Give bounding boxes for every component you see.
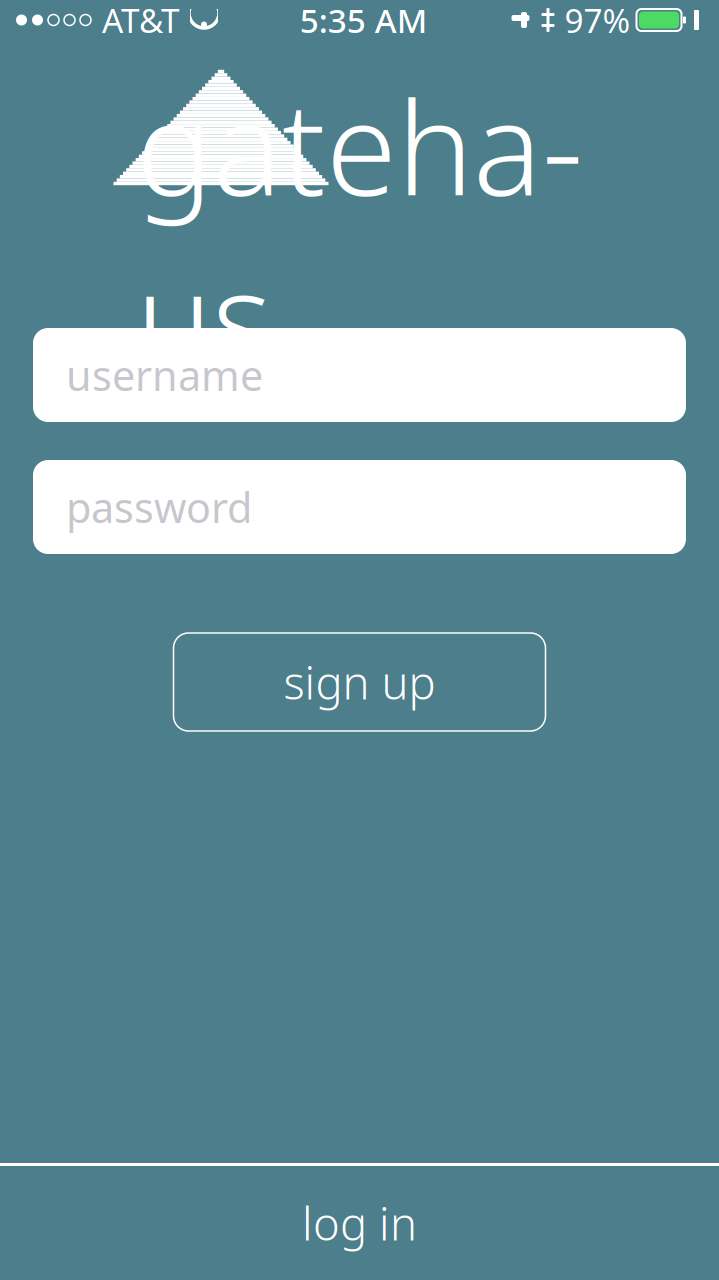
staticText: 97% — [564, 0, 630, 42]
staticText: sign up — [283, 652, 435, 712]
staticText: username — [66, 348, 263, 402]
staticText: AT&T — [102, 0, 180, 42]
button[interactable]: log in — [0, 1166, 719, 1280]
button[interactable]: username — [33, 328, 686, 422]
staticText: password — [66, 480, 252, 534]
button[interactable]: sign up — [173, 633, 545, 731]
staticText: gatehaus — [136, 61, 583, 401]
staticText: 5:35 AM — [300, 0, 428, 42]
button[interactable]: password — [33, 460, 686, 554]
staticText: log in — [302, 1193, 417, 1253]
